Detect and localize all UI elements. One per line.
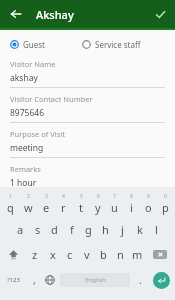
button[interactable]: Remarks: [10, 164, 165, 187]
button[interactable]: .: [132, 267, 148, 293]
button[interactable]: 2: [19, 191, 37, 217]
staticText: q: [7, 200, 14, 215]
button[interactable]: z: [26, 242, 44, 267]
button[interactable]: h: [97, 217, 114, 242]
button[interactable]: c: [61, 242, 78, 267]
button[interactable]: 6: [89, 191, 106, 217]
button[interactable]: Guest: [10, 37, 82, 52]
button[interactable]: v: [78, 242, 95, 267]
staticText: 1: [9, 193, 12, 200]
staticText: n: [117, 247, 124, 262]
staticText: Service staff: [95, 39, 141, 50]
button[interactable]: 9: [140, 191, 157, 217]
staticText: x: [50, 247, 56, 262]
button[interactable]: m: [129, 242, 146, 267]
staticText: Akshay: [36, 7, 74, 22]
staticText: g: [85, 222, 92, 237]
staticText: m: [132, 247, 143, 262]
staticText: 1 hour: [10, 177, 37, 187]
button[interactable]: Backspace: [146, 242, 174, 267]
staticText: d: [51, 222, 58, 237]
staticText: r: [61, 200, 66, 215]
button[interactable]: n: [112, 242, 129, 267]
staticText: 5: [80, 193, 83, 200]
staticText: s: [35, 222, 41, 237]
button[interactable]: 7: [106, 191, 123, 217]
staticText: t: [79, 200, 83, 215]
staticText: akshay: [10, 72, 38, 84]
staticText: 2: [27, 193, 30, 200]
staticText: v: [84, 247, 90, 262]
button[interactable]: 1: [1, 191, 19, 217]
staticText: a: [17, 222, 24, 237]
button[interactable]: 5: [72, 191, 89, 217]
staticText: h: [102, 222, 109, 237]
button[interactable]: ,: [26, 267, 42, 293]
button[interactable]: 0: [157, 191, 174, 217]
button[interactable]: English: [60, 273, 130, 287]
staticText: ?123: [7, 276, 20, 284]
button[interactable]: j: [114, 217, 131, 242]
button[interactable]: k: [131, 217, 148, 242]
button[interactable]: 8: [123, 191, 140, 217]
staticText: ,: [33, 273, 36, 287]
button[interactable]: Enter: [148, 267, 174, 293]
staticText: 0: [164, 193, 167, 200]
button[interactable]: Shift: [1, 242, 26, 267]
staticText: e: [43, 200, 50, 215]
button[interactable]: ?123: [1, 267, 26, 293]
staticText: j: [121, 222, 124, 237]
button[interactable]: 4: [55, 191, 72, 217]
button[interactable]: Visitor Name: [10, 59, 165, 94]
staticText: i: [130, 200, 133, 215]
button[interactable]: Save: [148, 2, 172, 26]
staticText: o: [145, 200, 152, 215]
staticText: c: [67, 247, 73, 262]
staticText: Guest: [23, 39, 45, 50]
staticText: 8975646: [10, 107, 45, 119]
staticText: meeting: [10, 142, 44, 154]
button[interactable]: g: [80, 217, 97, 242]
staticText: 9: [147, 193, 150, 200]
button[interactable]: x: [44, 242, 61, 267]
button[interactable]: f: [63, 217, 80, 242]
button[interactable]: Visitor Contact Number: [10, 94, 165, 129]
staticText: f: [70, 222, 74, 237]
button[interactable]: Change language: [42, 267, 58, 293]
staticText: b: [100, 247, 107, 262]
staticText: p: [162, 200, 169, 215]
button[interactable]: l: [148, 217, 165, 242]
staticText: 4: [62, 193, 65, 200]
button[interactable]: a: [11, 217, 29, 242]
staticText: 3: [45, 193, 48, 200]
staticText: Remarks: [10, 164, 41, 174]
button[interactable]: Purpose of Visit: [10, 129, 165, 164]
staticText: 7: [113, 193, 116, 200]
staticText: z: [32, 247, 38, 262]
button[interactable]: 3: [37, 191, 55, 217]
button[interactable]: Back: [4, 2, 28, 26]
staticText: 8: [130, 193, 133, 200]
staticText: l: [155, 222, 158, 237]
staticText: u: [111, 200, 118, 215]
button[interactable]: s: [29, 217, 46, 242]
staticText: y: [95, 200, 101, 215]
button[interactable]: d: [46, 217, 63, 242]
staticText: Visitor Contact Number: [10, 94, 93, 104]
staticText: Visitor Name: [10, 59, 56, 69]
staticText: k: [137, 222, 143, 237]
staticText: English: [85, 276, 106, 284]
staticText: .: [139, 273, 142, 287]
button[interactable]: b: [95, 242, 112, 267]
button[interactable]: Service staff: [82, 37, 141, 52]
staticText: w: [24, 200, 33, 215]
staticText: 6: [97, 193, 100, 200]
staticText: Purpose of Visit: [10, 129, 65, 139]
